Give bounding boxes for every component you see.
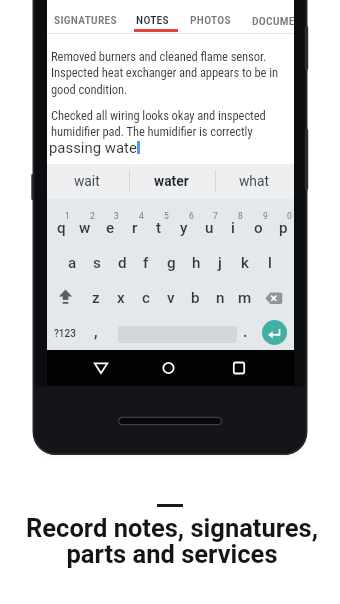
button[interactable]: h xyxy=(136,251,256,275)
staticText: r xyxy=(132,219,138,237)
staticText: i xyxy=(231,219,235,237)
button[interactable] xyxy=(212,350,294,386)
staticText: 2 xyxy=(90,211,95,221)
staticText: 6 xyxy=(189,211,194,221)
button[interactable]: u xyxy=(149,216,269,240)
button[interactable]: v xyxy=(111,286,231,310)
staticText: 5 xyxy=(164,211,169,221)
staticText: 0 xyxy=(287,211,292,221)
staticText: , xyxy=(94,322,98,341)
staticText: p xyxy=(279,219,288,237)
button[interactable]: e xyxy=(50,216,170,240)
staticText: g xyxy=(167,254,176,272)
button[interactable]: wait xyxy=(27,169,147,193)
staticText: a xyxy=(68,254,77,272)
staticText: 8 xyxy=(238,211,243,221)
button[interactable]: ?123 xyxy=(5,322,125,346)
button[interactable]: w xyxy=(25,216,145,240)
button[interactable]: b xyxy=(135,286,255,310)
button[interactable]: n xyxy=(160,286,280,310)
button[interactable]: x xyxy=(61,286,181,310)
staticText: l xyxy=(268,254,272,272)
staticText: Checked all wiring looks okay and inspec… xyxy=(51,108,266,139)
button[interactable]: what xyxy=(194,169,314,193)
button[interactable]: , xyxy=(36,319,156,343)
button[interactable]: DOCUMENTS xyxy=(252,8,298,32)
button[interactable]: k xyxy=(185,251,305,275)
staticText: wait xyxy=(74,173,100,189)
staticText: passing wate xyxy=(49,139,137,156)
staticText: 4 xyxy=(139,211,144,221)
button[interactable]: d xyxy=(62,251,182,275)
staticText: b xyxy=(191,289,200,307)
button[interactable]: PHOTOS xyxy=(150,7,270,31)
staticText: q xyxy=(57,219,66,237)
staticText: PHOTOS xyxy=(190,13,231,26)
staticText: u xyxy=(205,219,214,237)
staticText: y xyxy=(180,219,188,237)
button[interactable]: . xyxy=(185,319,305,343)
staticText: x xyxy=(117,289,125,307)
button[interactable]: p xyxy=(223,216,340,240)
button[interactable] xyxy=(130,350,212,386)
button[interactable]: t xyxy=(99,216,219,240)
button[interactable]: i xyxy=(173,216,293,240)
staticText: Record notes, signatures, parts and serv… xyxy=(26,513,318,569)
button[interactable]: r xyxy=(75,216,195,240)
staticText: o xyxy=(254,219,263,237)
button[interactable]: y xyxy=(124,216,244,240)
staticText: n xyxy=(216,289,225,307)
button[interactable]: f xyxy=(86,251,206,275)
button[interactable]: s xyxy=(37,251,157,275)
button[interactable]: m xyxy=(185,286,305,310)
button[interactable]: o xyxy=(198,216,318,240)
button[interactable]: l xyxy=(210,251,330,275)
staticText: t xyxy=(156,219,162,237)
button[interactable]: water xyxy=(111,169,231,193)
button[interactable]: SIGNATURES xyxy=(25,7,145,31)
staticText: k xyxy=(241,254,249,272)
button[interactable]: a xyxy=(12,251,132,275)
staticText: Removed burners and cleaned flame sensor… xyxy=(51,49,278,97)
staticText: c xyxy=(142,289,150,307)
button[interactable]: c xyxy=(86,286,206,310)
button[interactable]: NOTES xyxy=(92,7,212,31)
staticText: v xyxy=(167,289,175,307)
staticText: e xyxy=(106,219,115,237)
button[interactable] xyxy=(262,320,287,345)
button[interactable]: j xyxy=(160,251,280,275)
staticText: 9 xyxy=(263,211,268,221)
staticText: NOTES xyxy=(136,13,169,26)
staticText: 3 xyxy=(114,211,119,221)
staticText: d xyxy=(118,254,127,272)
staticText: j xyxy=(218,254,222,272)
staticText: 1 xyxy=(65,211,70,221)
button[interactable]: g xyxy=(111,251,231,275)
staticText: . xyxy=(243,322,248,341)
staticText: DOCUMENTS xyxy=(252,14,298,27)
staticText: 7 xyxy=(213,211,218,221)
staticText: w xyxy=(79,219,91,237)
staticText: what xyxy=(239,173,269,189)
staticText: h xyxy=(192,254,201,272)
button[interactable]: z xyxy=(36,286,156,310)
staticText: water xyxy=(154,173,189,189)
staticText: s xyxy=(93,254,101,272)
staticText: m xyxy=(238,289,252,307)
staticText: f xyxy=(143,254,149,272)
staticText: SIGNATURES xyxy=(54,13,117,26)
button[interactable]: q xyxy=(1,216,121,240)
staticText: ?123 xyxy=(54,328,76,340)
staticText: z xyxy=(92,289,100,307)
button[interactable] xyxy=(47,350,130,386)
